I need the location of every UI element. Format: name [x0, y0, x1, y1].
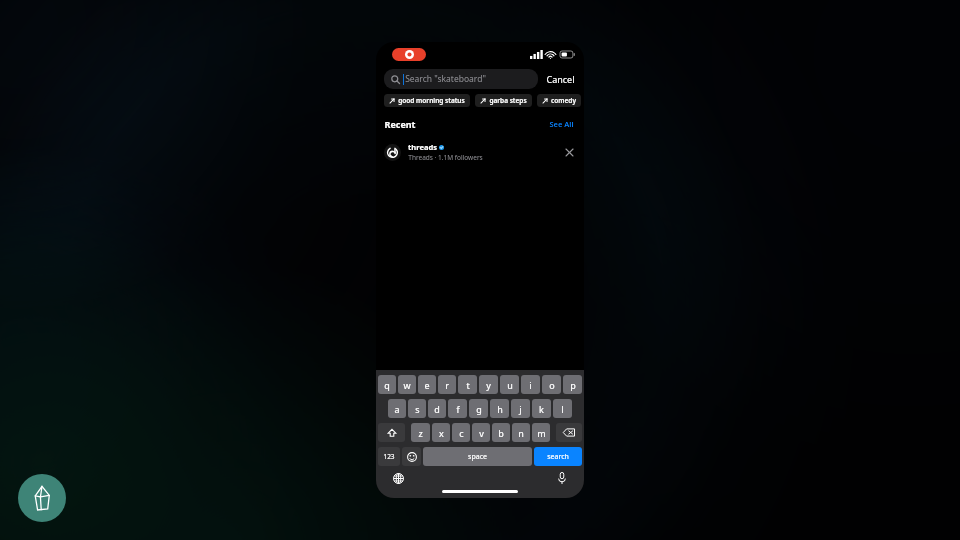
button[interactable]: d: [428, 399, 446, 418]
staticText: v: [479, 427, 484, 439]
staticText: y: [486, 379, 491, 391]
button[interactable]: k: [532, 399, 551, 418]
button[interactable]: 123: [378, 447, 400, 466]
staticText: Recent: [384, 118, 416, 130]
staticText: See All: [549, 119, 574, 129]
staticText: u: [507, 379, 513, 391]
button[interactable]: r: [438, 375, 456, 394]
button[interactable]: q: [378, 375, 396, 394]
button[interactable]: s: [408, 399, 426, 418]
staticText: f: [456, 403, 460, 415]
staticText: s: [415, 403, 420, 415]
staticText: garba steps: [489, 96, 527, 105]
staticText: space: [468, 452, 487, 462]
button[interactable]: w: [398, 375, 416, 394]
button[interactable]: u: [500, 375, 519, 394]
button[interactable]: App badge: [18, 474, 66, 522]
staticText: r: [445, 379, 449, 391]
staticText: q: [384, 379, 390, 391]
staticText: l: [561, 403, 564, 415]
staticText: j: [519, 403, 522, 415]
button[interactable]: garba steps: [475, 94, 532, 107]
staticText: Cancel: [546, 73, 575, 85]
staticText: m: [537, 427, 546, 439]
staticText: z: [418, 427, 423, 439]
button[interactable]: Backspace: [556, 423, 582, 442]
button[interactable]: g: [469, 399, 488, 418]
staticText: search: [547, 452, 569, 462]
button[interactable]: Change keyboard language: [390, 470, 406, 486]
button[interactable]: c: [452, 423, 470, 442]
button[interactable]: p: [563, 375, 582, 394]
button[interactable]: b: [492, 423, 510, 442]
staticText: n: [518, 427, 524, 439]
button[interactable]: Emoji: [402, 447, 421, 466]
button[interactable]: Shift: [378, 423, 405, 442]
button[interactable]: y: [479, 375, 498, 394]
button[interactable]: i: [521, 375, 540, 394]
button[interactable]: Screen recording: [392, 48, 426, 61]
button[interactable]: h: [490, 399, 509, 418]
button[interactable]: l: [553, 399, 572, 418]
staticText: e: [424, 379, 430, 391]
button[interactable]: search: [534, 447, 582, 466]
staticText: threads: [408, 142, 437, 152]
button[interactable]: threads: [376, 139, 584, 165]
button[interactable]: Search "skateboard": [384, 69, 538, 89]
staticText: x: [439, 427, 444, 439]
button[interactable]: o: [542, 375, 561, 394]
button[interactable]: Voice input: [554, 470, 570, 486]
button[interactable]: Cancel: [545, 70, 576, 88]
staticText: Search "skateboard": [405, 73, 486, 85]
staticText: Threads · 1.1M followers: [408, 153, 483, 162]
staticText: c: [459, 427, 464, 439]
button[interactable]: f: [448, 399, 467, 418]
button[interactable]: Remove: [562, 145, 576, 159]
staticText: p: [570, 379, 576, 391]
staticText: d: [434, 403, 440, 415]
button[interactable]: See All: [547, 117, 576, 131]
button[interactable]: n: [512, 423, 530, 442]
button[interactable]: a: [388, 399, 406, 418]
staticText: t: [466, 379, 470, 391]
button[interactable]: e: [418, 375, 436, 394]
staticText: b: [498, 427, 504, 439]
button[interactable]: j: [511, 399, 530, 418]
button[interactable]: good morning status: [384, 94, 470, 107]
staticText: i: [529, 379, 532, 391]
button[interactable]: x: [432, 423, 450, 442]
button[interactable]: v: [472, 423, 490, 442]
button[interactable]: comedy: [537, 94, 581, 107]
staticText: g: [476, 403, 482, 415]
staticText: k: [539, 403, 544, 415]
staticText: 123: [383, 452, 395, 461]
staticText: good morning status: [398, 96, 465, 105]
staticText: a: [394, 403, 400, 415]
button[interactable]: space: [423, 447, 532, 466]
staticText: comedy: [551, 96, 576, 105]
button[interactable]: m: [532, 423, 550, 442]
button[interactable]: z: [411, 423, 430, 442]
staticText: o: [549, 379, 555, 391]
staticText: w: [403, 379, 411, 391]
staticText: h: [497, 403, 503, 415]
button[interactable]: t: [458, 375, 477, 394]
